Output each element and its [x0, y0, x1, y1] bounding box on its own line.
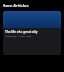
- staticText: The life of a great city: [5, 30, 38, 34]
- staticText: Magazine - 4 min read: [5, 34, 32, 37]
- button[interactable]: The life of a great city: [3, 11, 61, 55]
- staticText: Save Articles: [3, 3, 29, 8]
- button[interactable]: Save Articles: [0, 0, 64, 11]
